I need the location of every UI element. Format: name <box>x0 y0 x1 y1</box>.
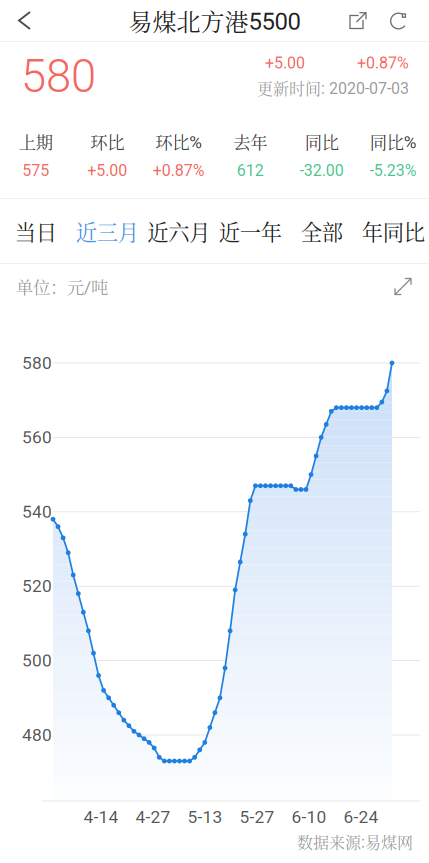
staticText: 环比 <box>90 129 124 154</box>
staticText: 575 <box>22 161 49 180</box>
staticText: -5.23% <box>370 161 417 180</box>
staticText: 500 <box>22 650 52 671</box>
staticText: 年同比 <box>362 216 425 246</box>
staticText: 4-27 <box>135 807 170 827</box>
staticText: 近一年 <box>219 216 282 246</box>
staticText: 540 <box>22 502 52 522</box>
staticText: 5-27 <box>239 807 274 827</box>
button[interactable]: 年同比 <box>357 199 429 263</box>
staticText: 580 <box>22 353 52 373</box>
staticText: -32.00 <box>300 161 344 180</box>
button[interactable]: 近一年 <box>214 199 286 263</box>
staticText: 更新时间: 2020-07-03 <box>257 76 409 99</box>
staticText: 580 <box>21 50 96 103</box>
staticText: 480 <box>22 725 52 745</box>
staticText: 易煤北方港5500 <box>128 3 300 38</box>
staticText: 612 <box>237 161 264 180</box>
button[interactable]: Fullscreen <box>393 276 413 296</box>
staticText: 近三月 <box>76 216 139 246</box>
button[interactable]: 近六月 <box>143 199 214 263</box>
staticText: 当日 <box>15 216 57 246</box>
staticText: 560 <box>22 427 52 447</box>
button[interactable]: Share <box>338 0 378 41</box>
staticText: 环比% <box>155 129 202 154</box>
button[interactable]: Back <box>0 0 47 41</box>
staticText: 5-13 <box>187 807 222 827</box>
staticText: 6-10 <box>291 807 326 827</box>
staticText: 6-24 <box>343 807 378 827</box>
staticText: +5.00 <box>87 161 127 180</box>
staticText: 近六月 <box>147 216 210 246</box>
button[interactable]: 当日 <box>0 199 71 263</box>
staticText: +5.00 <box>265 54 305 72</box>
staticText: 520 <box>22 576 52 596</box>
staticText: 上期 <box>19 129 53 154</box>
button[interactable]: 全部 <box>286 199 357 263</box>
staticText: 单位：元/吨 <box>16 274 108 299</box>
staticText: +0.87% <box>357 54 409 72</box>
staticText: 同比% <box>370 129 417 154</box>
staticText: 同比 <box>305 129 339 154</box>
staticText: 4-14 <box>83 807 118 827</box>
button[interactable]: 近三月 <box>71 199 143 263</box>
staticText: 去年 <box>233 129 267 154</box>
staticText: 全部 <box>301 216 343 246</box>
button[interactable]: Refresh <box>378 0 429 41</box>
staticText: +0.87% <box>153 161 205 180</box>
staticText: 数据来源:易煤网 <box>297 830 413 853</box>
